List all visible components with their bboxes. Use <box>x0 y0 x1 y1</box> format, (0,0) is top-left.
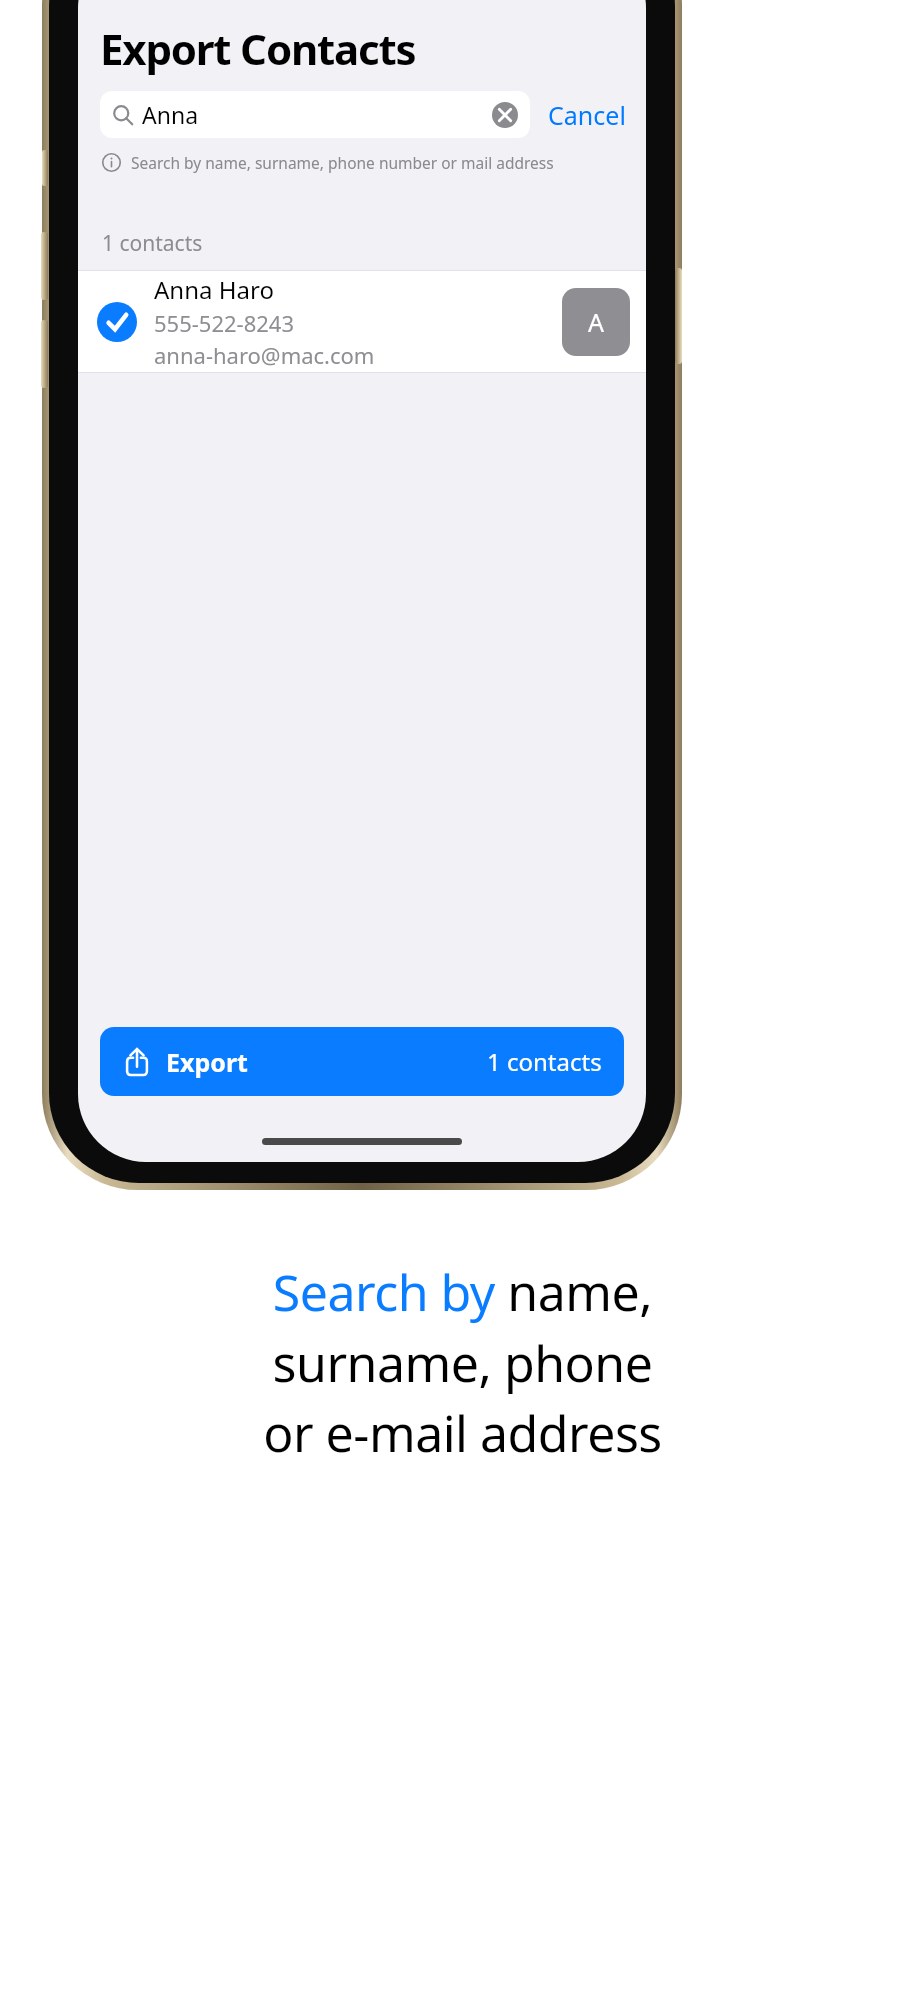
staticText: 1 contacts <box>102 229 203 258</box>
button[interactable]: Selected <box>78 271 646 372</box>
staticText: 1 contacts <box>487 1045 602 1078</box>
button[interactable]: Anna <box>100 91 530 138</box>
staticText: anna-haro@mac.com <box>154 340 375 370</box>
button[interactable]: Selected <box>96 301 138 343</box>
staticText: Cancel <box>548 98 626 132</box>
staticText: 555-522-8243 <box>154 308 295 338</box>
button[interactable]: Cancel <box>546 92 628 138</box>
staticText: Anna Haro <box>154 273 274 306</box>
staticText: Anna <box>142 99 199 130</box>
staticText: Export <box>166 1045 248 1079</box>
staticText: Search by name, surname, phone number or… <box>131 152 554 173</box>
staticText: Search by name, surname, phone or e-mail… <box>263 1258 662 1467</box>
button[interactable]: Export <box>100 1027 624 1096</box>
button[interactable]: Clear search <box>492 102 518 128</box>
staticText: Export Contacts <box>100 20 416 77</box>
staticText: A <box>588 305 604 339</box>
